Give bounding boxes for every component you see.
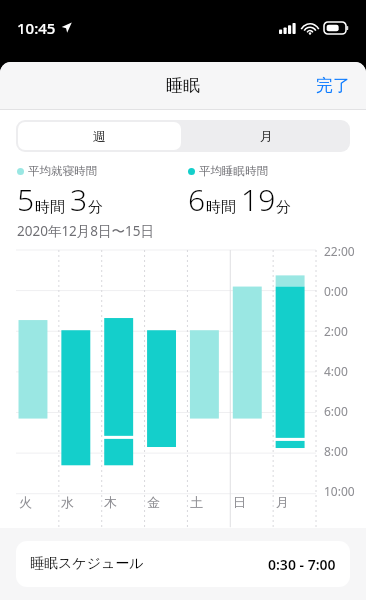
staticText: 4:00 [324,363,348,379]
staticText: 金 [147,494,160,510]
staticText: 木 [104,494,117,510]
staticText: 6:00 [324,403,348,419]
staticText: 10:45 [17,18,56,38]
staticText: 完了 [316,75,350,96]
button[interactable]: 月 [183,120,350,152]
staticText: 10:00 [324,483,355,499]
button[interactable]: 週 [18,122,181,150]
staticText: 睡眠 [166,75,200,96]
staticText: 睡眠スケジュール [30,555,144,573]
staticText: 0:00 [324,283,348,299]
staticText: 19 [241,179,276,220]
staticText: 6 [188,179,206,220]
staticText: 水 [61,494,74,510]
staticText: 2:00 [324,323,348,339]
staticText: 火 [19,494,32,510]
staticText: 分 [88,198,103,217]
staticText: 週 [93,128,106,144]
staticText: 2020年12月8日〜15日 [17,222,154,240]
staticText: 分 [276,198,291,217]
staticText: 土 [190,494,203,510]
staticText: 時間 [206,198,236,217]
staticText: 3 [70,179,88,220]
staticText: 月 [260,128,273,144]
staticText: 平均就寝時間 [28,164,97,178]
staticText: 5 [17,179,35,220]
button[interactable]: 睡眠スケジュール [16,541,350,587]
staticText: 日 [233,494,246,510]
staticText: 時間 [35,198,65,217]
staticText: 0:30 - 7:00 [268,555,336,574]
staticText: 22:00 [324,243,355,259]
staticText: 平均睡眠時間 [199,164,268,178]
staticText: 8:00 [324,443,348,459]
button[interactable]: 完了 [300,65,366,106]
staticText: 月 [276,494,289,510]
